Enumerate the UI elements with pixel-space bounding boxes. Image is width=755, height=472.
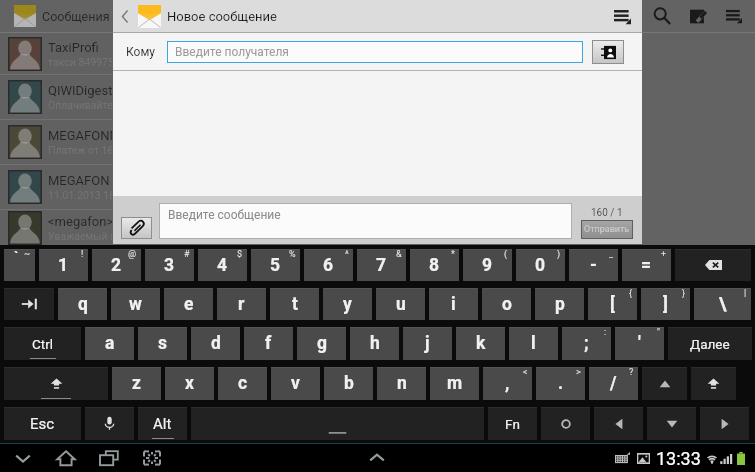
button[interactable]: Новое сообщение: [681, 0, 715, 32]
button[interactable]: y: [323, 288, 372, 320]
button[interactable]: k: [456, 327, 505, 360]
button[interactable]: Меню: [717, 0, 751, 32]
button[interactable]: -: [569, 249, 618, 281]
staticText: v: [291, 373, 300, 394]
button[interactable]: d: [191, 327, 240, 360]
button[interactable]: =: [622, 249, 671, 281]
button[interactable]: <megafon>: [0, 210, 112, 245]
button[interactable]: Ctrl: [4, 327, 81, 360]
button[interactable]: x: [165, 367, 214, 400]
button[interactable]: h: [350, 327, 399, 360]
staticText: <megafon>: [48, 214, 112, 229]
button[interactable]: e: [164, 288, 213, 320]
button[interactable]: Fn: [488, 407, 537, 440]
button[interactable]: Назад: [113, 0, 137, 32]
staticText: q: [78, 294, 88, 315]
staticText: y: [343, 294, 352, 315]
button[interactable]: circle: [541, 407, 590, 440]
button[interactable]: up: [642, 367, 687, 400]
button[interactable]: Главная: [47, 444, 85, 472]
staticText: 7: [376, 255, 387, 276]
button[interactable]: 4: [198, 249, 247, 281]
button[interactable]: `: [4, 249, 35, 281]
button[interactable]: j: [403, 327, 452, 360]
button[interactable]: ;: [562, 327, 611, 360]
button[interactable]: 6: [304, 249, 353, 281]
button[interactable]: MEGAFONM: [0, 120, 112, 164]
staticText: Сообщения: [42, 9, 110, 24]
button[interactable]: Введите получателя: [167, 41, 583, 63]
button[interactable]: Назад: [4, 444, 42, 472]
button[interactable]: QIWIDigest: [0, 75, 112, 119]
staticText: <: [523, 367, 528, 378]
staticText: (: [504, 249, 508, 260]
button[interactable]: l: [509, 327, 558, 360]
button[interactable]: z: [112, 367, 161, 400]
button[interactable]: q: [58, 288, 107, 320]
button[interactable]: p: [535, 288, 584, 320]
button[interactable]: .: [536, 367, 585, 400]
button[interactable]: shift: [4, 367, 108, 400]
button[interactable]: c: [218, 367, 267, 400]
button[interactable]: i: [429, 288, 478, 320]
button[interactable]: Esc: [4, 407, 81, 440]
button[interactable]: left: [594, 407, 643, 440]
button[interactable]: mic: [85, 407, 134, 440]
button[interactable]: /: [589, 367, 638, 400]
button[interactable]: b: [324, 367, 373, 400]
staticText: &: [396, 249, 402, 260]
button[interactable]: a: [85, 327, 134, 360]
button[interactable]: tab: [4, 288, 54, 320]
button[interactable]: f: [244, 327, 293, 360]
button[interactable]: t: [270, 288, 319, 320]
button[interactable]: bksp: [675, 249, 751, 281]
button[interactable]: g: [297, 327, 346, 360]
staticText: x: [185, 373, 194, 394]
button[interactable]: 1: [39, 249, 88, 281]
button[interactable]: down: [647, 407, 696, 440]
button[interactable]: Отправить: [581, 220, 633, 239]
button[interactable]: Недавние: [90, 444, 128, 472]
button[interactable]: Введите сообщение: [159, 203, 572, 239]
button[interactable]: ': [615, 327, 664, 360]
staticText: MEGAFONM: [48, 128, 112, 143]
staticText: j: [425, 333, 430, 354]
button[interactable]: Контакты: [592, 40, 624, 64]
button[interactable]: o: [482, 288, 531, 320]
button[interactable]: Меню диалога: [602, 0, 642, 32]
button[interactable]: 0: [516, 249, 565, 281]
button[interactable]: [: [588, 288, 637, 320]
button[interactable]: Развернуть: [358, 444, 396, 472]
button[interactable]: ,: [483, 367, 532, 400]
button[interactable]: Далее: [668, 327, 752, 360]
button[interactable]: Вложение: [121, 217, 152, 239]
staticText: g: [317, 333, 327, 354]
button[interactable]: 9: [463, 249, 512, 281]
staticText: 2: [111, 255, 122, 276]
button[interactable]: s: [138, 327, 187, 360]
button[interactable]: MEGAFON: [0, 165, 112, 209]
button[interactable]: Alt: [138, 407, 187, 440]
button[interactable]: w: [111, 288, 160, 320]
button[interactable]: Сообщения: [0, 0, 110, 32]
button[interactable]: TaxiProfi: [0, 33, 112, 74]
button[interactable]: \: [694, 288, 751, 320]
button[interactable]: u: [376, 288, 425, 320]
button[interactable]: v: [271, 367, 320, 400]
button[interactable]: 2: [92, 249, 141, 281]
staticText: f: [265, 333, 272, 354]
button[interactable]: Поиск: [645, 0, 679, 32]
button[interactable]: m: [430, 367, 479, 400]
button[interactable]: space: [191, 407, 484, 440]
button[interactable]: r: [217, 288, 266, 320]
staticText: Esc: [30, 415, 55, 433]
button[interactable]: 8: [410, 249, 459, 281]
button[interactable]: n: [377, 367, 426, 400]
button[interactable]: right: [700, 407, 749, 440]
button[interactable]: 3: [145, 249, 194, 281]
button[interactable]: 7: [357, 249, 406, 281]
button[interactable]: 5: [251, 249, 300, 281]
button[interactable]: shift2: [691, 367, 736, 400]
button[interactable]: ]: [641, 288, 690, 320]
button[interactable]: Снимок экрана: [133, 444, 171, 472]
